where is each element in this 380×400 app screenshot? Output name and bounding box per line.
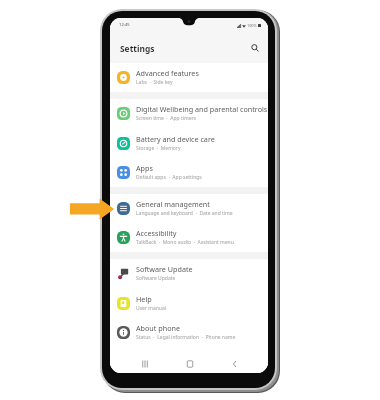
staticText: Accessibility [136, 228, 177, 238]
staticText: Status · Legal information · Phone name [136, 334, 236, 341]
staticText: Software Update [136, 275, 176, 282]
staticText: Apps [136, 163, 153, 173]
button[interactable]: Apps [110, 158, 268, 187]
button[interactable]: Digital Wellbeing and parental controls [110, 99, 268, 128]
staticText: Digital Wellbeing and parental controls [136, 104, 268, 114]
button[interactable]: Back [224, 353, 246, 373]
button[interactable]: Recents [134, 353, 156, 373]
staticText: Storage · Memory [136, 145, 181, 152]
button[interactable]: Home [179, 353, 201, 373]
button[interactable]: About phone [110, 318, 268, 347]
staticText: TalkBack · Mono audio · Assistant menu [136, 239, 234, 246]
button[interactable]: Search [248, 41, 261, 54]
staticText: About phone [136, 323, 180, 333]
button[interactable]: Software Update [110, 259, 268, 288]
staticText: Labs · Side key [136, 79, 173, 86]
button[interactable]: Advanced features [110, 63, 268, 92]
staticText: Screen time · App timers [136, 115, 196, 122]
staticText: Battery and device care [136, 134, 215, 144]
staticText: 12:45 [119, 22, 130, 28]
staticText: Settings [120, 43, 155, 54]
staticText: 100% [247, 23, 257, 28]
staticText: Software Update [136, 264, 193, 274]
staticText: Language and keyboard · Date and time [136, 210, 233, 217]
button[interactable]: Help [110, 289, 268, 318]
staticText: User manual [136, 305, 166, 312]
button[interactable]: Accessibility [110, 223, 268, 252]
staticText: Help [136, 294, 152, 304]
button[interactable]: General management [110, 194, 268, 223]
staticText: Default apps · App settings [136, 174, 202, 181]
button[interactable]: Battery and device care [110, 129, 268, 158]
staticText: General management [136, 199, 210, 209]
staticText: Advanced features [136, 68, 199, 78]
